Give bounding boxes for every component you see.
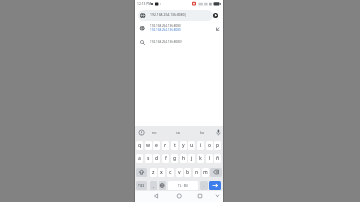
button[interactable]	[136, 168, 147, 177]
staticText: k	[199, 155, 202, 162]
button[interactable]: o	[206, 141, 213, 150]
staticText: j	[191, 155, 193, 162]
button[interactable]: TL · EN	[168, 181, 198, 190]
staticText: w	[146, 142, 151, 149]
button[interactable]: f	[162, 154, 169, 163]
staticText: no	[152, 130, 157, 135]
staticText: x	[160, 169, 163, 176]
button[interactable]: ñ	[214, 154, 221, 163]
button[interactable]: no	[147, 127, 161, 137]
staticText: e	[155, 142, 158, 149]
staticText: 192.168.254.136:8080/	[150, 40, 182, 44]
button[interactable]: n	[193, 168, 200, 177]
staticText: a	[138, 155, 141, 162]
staticText: n	[195, 169, 199, 176]
button[interactable]: v	[176, 168, 183, 177]
button[interactable]	[210, 168, 222, 177]
staticText: q	[138, 142, 142, 149]
button[interactable]: z	[150, 168, 157, 177]
staticText: p	[216, 142, 220, 149]
staticText: d	[155, 155, 159, 162]
staticText: 12:13 PM	[137, 1, 152, 5]
button[interactable]	[159, 181, 166, 190]
button[interactable]: ?123	[136, 181, 147, 190]
staticText: h	[182, 155, 186, 162]
staticText: f	[165, 155, 167, 162]
staticText: i	[200, 142, 202, 149]
staticText: t	[174, 142, 176, 149]
staticText: b	[186, 169, 190, 176]
button[interactable]: b	[184, 168, 191, 177]
button[interactable]: q	[136, 141, 143, 150]
button[interactable]	[135, 39, 223, 47]
button[interactable]: w	[145, 141, 152, 150]
button[interactable]: ,	[150, 181, 157, 190]
staticText: ñ	[216, 155, 220, 162]
button[interactable]: t	[171, 141, 178, 150]
button[interactable]: .	[200, 181, 208, 190]
button[interactable]	[213, 13, 218, 18]
staticText: sa	[176, 130, 180, 135]
button[interactable]: m	[202, 168, 209, 177]
staticText: g	[173, 155, 177, 162]
staticText: m	[203, 169, 208, 176]
button[interactable]	[175, 192, 183, 200]
staticText: c	[169, 169, 172, 176]
staticText: l	[209, 155, 211, 162]
button[interactable]: j	[188, 154, 195, 163]
button[interactable]	[135, 23, 223, 34]
button[interactable]: g	[171, 154, 178, 163]
button[interactable]: k	[197, 154, 204, 163]
staticText: ?123	[138, 184, 145, 188]
button[interactable]	[152, 192, 160, 200]
button[interactable]: s	[145, 154, 152, 163]
staticText: y	[182, 142, 185, 149]
button[interactable]: i	[197, 141, 204, 150]
button[interactable]: a	[136, 154, 143, 163]
button[interactable]	[138, 10, 213, 21]
button[interactable]: y	[180, 141, 187, 150]
staticText: v	[178, 169, 181, 176]
staticText: z	[152, 169, 155, 176]
button[interactable]: sa	[171, 127, 185, 137]
button[interactable]: e	[153, 141, 160, 150]
staticText: u	[190, 142, 194, 149]
button[interactable]: p	[214, 141, 221, 150]
staticText: r	[164, 142, 167, 149]
button[interactable]	[196, 192, 204, 200]
button[interactable]	[209, 181, 221, 190]
button[interactable]: r	[162, 141, 169, 150]
button[interactable]: h	[180, 154, 187, 163]
button[interactable]: l	[206, 154, 213, 163]
staticText: ko	[200, 130, 205, 135]
staticText: .	[203, 183, 205, 188]
staticText: ,	[153, 183, 155, 188]
button[interactable]: d	[153, 154, 160, 163]
staticText: 192.168.254.136:8080	[150, 28, 181, 32]
button[interactable]: u	[188, 141, 195, 150]
button[interactable]: x	[158, 168, 165, 177]
button[interactable]: ko	[195, 127, 209, 137]
staticText: s	[147, 155, 150, 162]
staticText: o	[208, 142, 212, 149]
staticText: 192.168.254.136:8080	[150, 24, 181, 28]
staticText: TL · EN	[178, 184, 188, 188]
staticText: 192.168.254.136:8080|	[150, 12, 187, 17]
button[interactable]: c	[167, 168, 174, 177]
